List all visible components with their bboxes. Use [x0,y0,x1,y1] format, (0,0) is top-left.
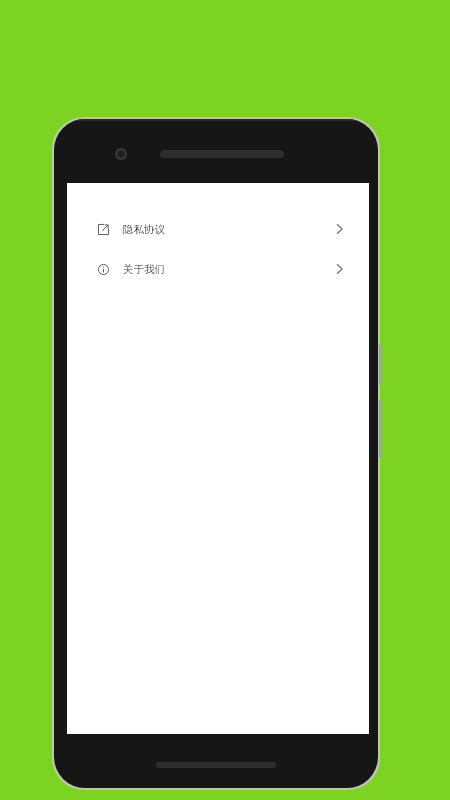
button[interactable]: 隐私协议 [67,214,369,244]
staticText: 关于我们 [123,263,165,276]
button[interactable]: 关于我们 [67,254,369,284]
other: Open [333,221,345,237]
staticText: 隐私协议 [123,223,165,236]
other: Open [333,261,345,277]
